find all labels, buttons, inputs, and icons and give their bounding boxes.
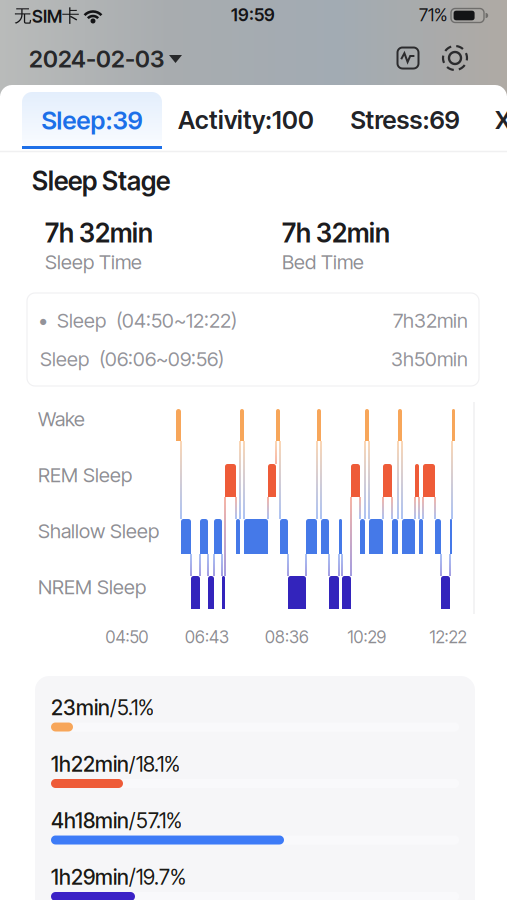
staticText: Shallow Sleep	[38, 519, 159, 543]
staticText: 1h29min/19.7%	[51, 865, 186, 889]
button[interactable]: X	[495, 105, 507, 135]
staticText: 10:29	[347, 627, 386, 647]
staticText: 04:50	[105, 627, 148, 647]
button[interactable]: Activity:100	[178, 105, 314, 135]
staticText: 4h18min/57.1%	[51, 808, 182, 833]
staticText: 12:22	[429, 627, 466, 647]
button[interactable]: Sleep:39	[22, 92, 162, 149]
staticText: 7h 32min	[282, 217, 390, 249]
staticText: 2024-02-03	[29, 45, 164, 73]
staticText: Sleep Time	[45, 250, 142, 274]
staticText: 3h50min	[391, 347, 468, 371]
staticText: Wake	[38, 407, 85, 431]
staticText: 7h32min	[393, 308, 468, 333]
button[interactable]	[395, 45, 421, 71]
button[interactable]: 2024-02-03	[29, 45, 249, 73]
staticText: 1h22min/18.1%	[51, 752, 180, 776]
staticText: X	[495, 105, 507, 135]
staticText: Bed Time	[282, 250, 364, 274]
staticText: REM Sleep	[38, 463, 132, 487]
staticText: 无SIM卡	[14, 5, 80, 27]
staticText: 7h 32min	[45, 217, 153, 249]
staticText: Activity:100	[178, 105, 314, 135]
staticText: 19:59	[231, 4, 275, 26]
staticText: 08:36	[265, 627, 309, 647]
staticText: • Sleep (04:50~12:22)	[38, 308, 237, 333]
staticText: NREM Sleep	[38, 575, 146, 599]
staticText: Sleep:39	[41, 105, 142, 136]
staticText: 06:43	[185, 627, 229, 647]
staticText: 23min/5.1%	[51, 695, 154, 720]
staticText: Sleep (06:06~09:56)	[40, 347, 224, 371]
button[interactable]	[442, 45, 468, 71]
staticText: Sleep Stage	[32, 165, 170, 197]
staticText: Stress:69	[350, 105, 459, 135]
button[interactable]: Stress:69	[350, 105, 459, 135]
staticText: 71%	[419, 4, 447, 26]
